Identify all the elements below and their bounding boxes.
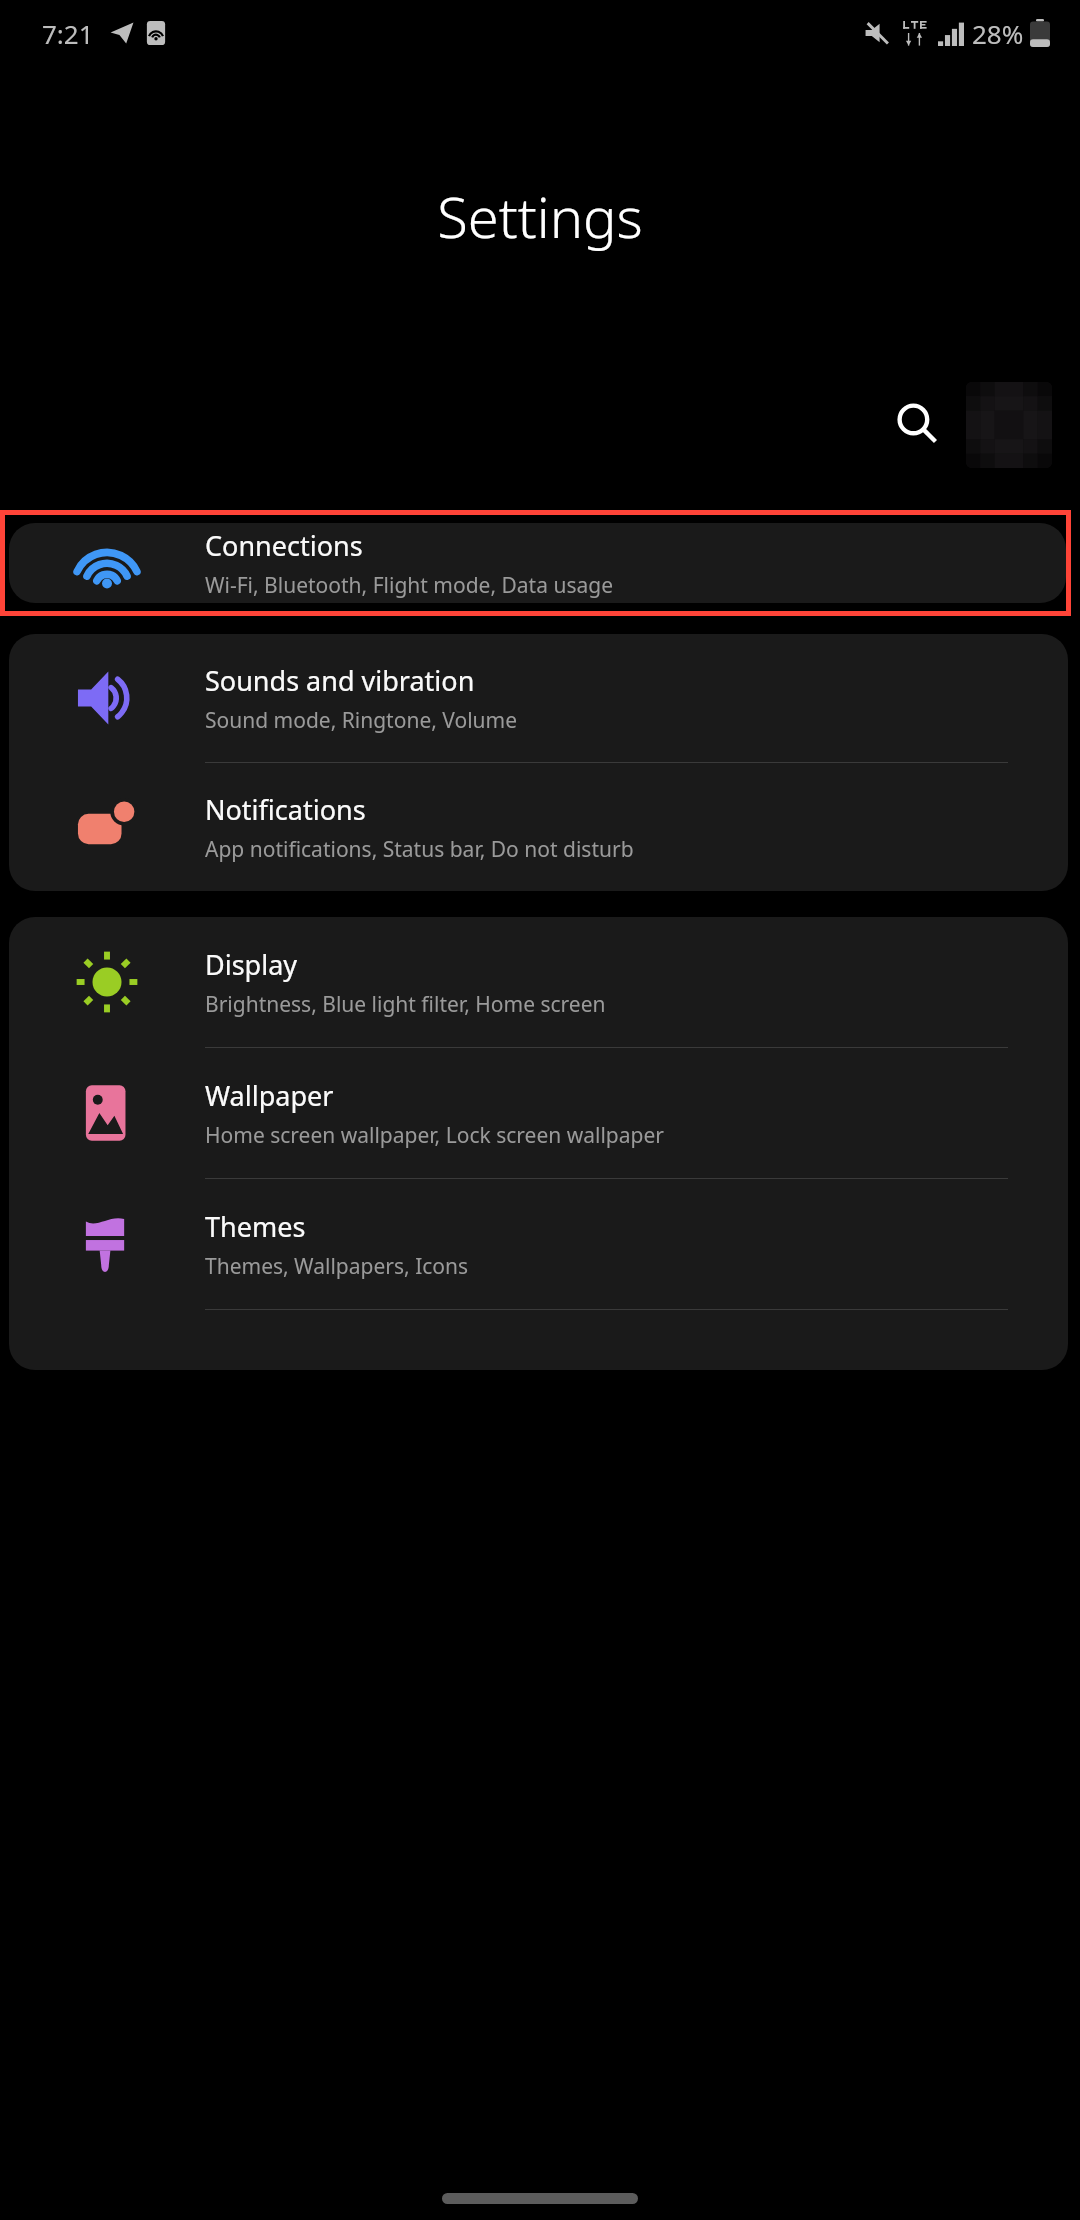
- button[interactable]: Notifications: [9, 763, 1068, 891]
- button[interactable]: Search: [880, 387, 956, 463]
- button[interactable]: Display: [9, 917, 1068, 1047]
- staticText: Themes, Wallpapers, Icons: [205, 1252, 469, 1281]
- staticText: Themes: [205, 1208, 306, 1245]
- staticText: 28%: [972, 16, 1024, 51]
- staticText: App notifications, Status bar, Do not di…: [205, 835, 634, 864]
- staticText: Wallpaper: [205, 1077, 334, 1114]
- staticText: Settings: [437, 178, 643, 254]
- button[interactable]: Themes: [9, 1179, 1068, 1309]
- staticText: Connections: [205, 527, 363, 564]
- button[interactable]: Connections: [9, 523, 1066, 603]
- staticText: Wi-Fi, Bluetooth, Flight mode, Data usag…: [205, 571, 614, 600]
- staticText: Home screen wallpaper, Lock screen wallp…: [205, 1121, 664, 1150]
- staticText: Sounds and vibration: [205, 662, 475, 699]
- button[interactable]: Wallpaper: [9, 1048, 1068, 1178]
- button[interactable]: Account: [966, 382, 1052, 468]
- staticText: Brightness, Blue light filter, Home scre…: [205, 990, 606, 1019]
- staticText: Notifications: [205, 791, 366, 828]
- staticText: Display: [205, 946, 298, 983]
- staticText: 7:21: [42, 16, 94, 51]
- staticText: Sound mode, Ringtone, Volume: [205, 706, 518, 735]
- button[interactable]: Sounds and vibration: [9, 634, 1068, 762]
